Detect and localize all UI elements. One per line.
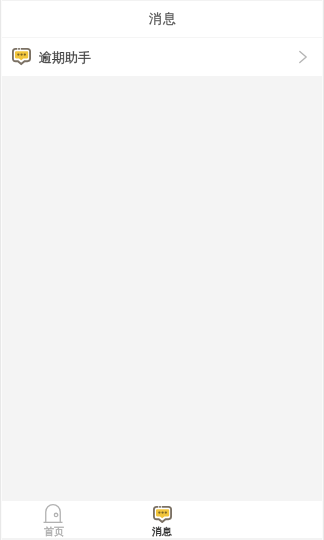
staticText: 消息 <box>149 10 178 26</box>
staticText: 消息 <box>149 10 178 26</box>
staticText: 首页 <box>44 525 64 538</box>
staticText: 逾期助手 <box>39 49 91 65</box>
button[interactable]: 消息 <box>108 501 216 540</box>
staticText: 逾期助手 <box>39 49 91 65</box>
staticText: 首页 <box>44 525 64 538</box>
staticText: 消息 <box>152 525 172 538</box>
button[interactable]: 逾期助手 <box>0 38 324 76</box>
button[interactable]: 首页 <box>0 501 108 540</box>
staticText: 消息 <box>152 525 172 538</box>
other: Open 逾期助手 <box>299 51 307 63</box>
